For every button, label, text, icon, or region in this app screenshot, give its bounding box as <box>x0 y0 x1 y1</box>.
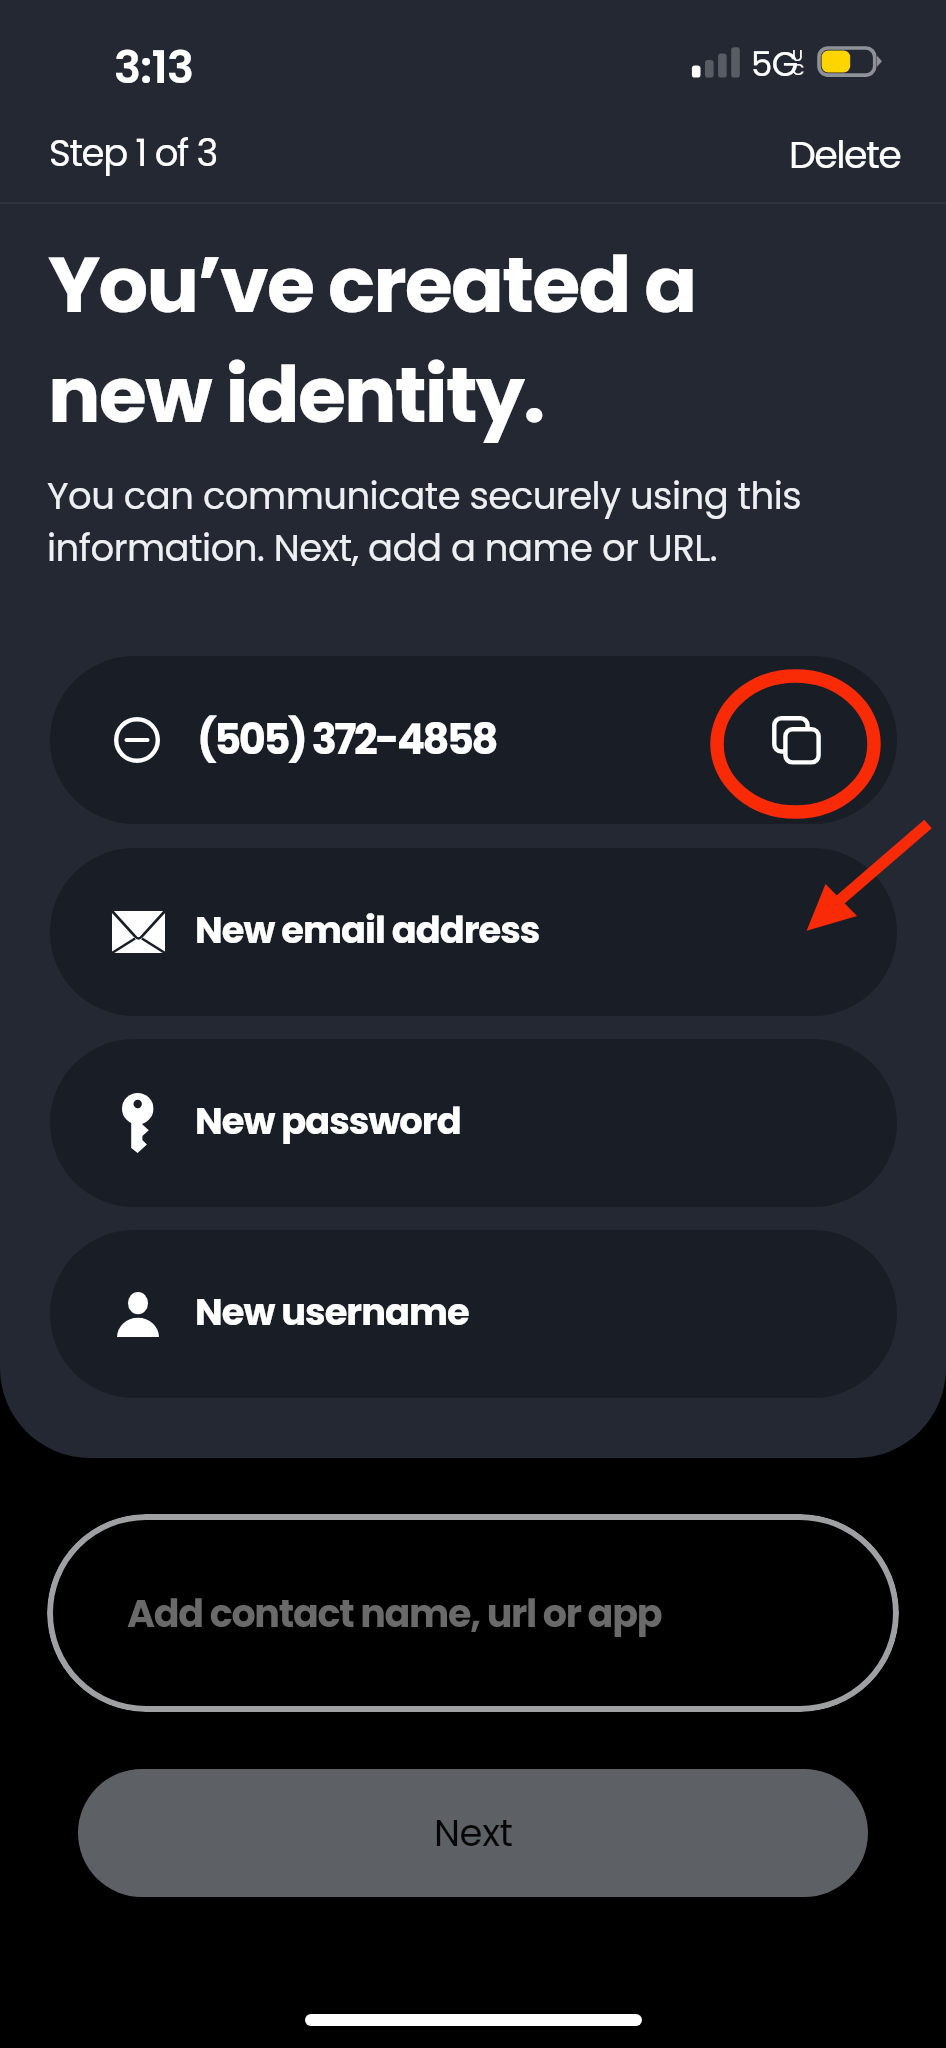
staticText: Delete <box>789 128 901 181</box>
button[interactable]: Step 1 of 3 <box>49 127 217 179</box>
staticText: Next <box>434 1807 513 1859</box>
staticText: 3:13 <box>114 36 194 99</box>
staticText: (505) 372-4858 <box>197 710 497 768</box>
staticText: You’ve created a new identity. <box>48 230 696 449</box>
staticText: New password <box>195 1095 461 1147</box>
button[interactable]: Delete <box>789 128 901 181</box>
staticText: Add contact name, url or app <box>127 1587 662 1640</box>
staticText: New email address <box>195 904 540 956</box>
button[interactable]: Copy phone number <box>732 676 859 803</box>
button[interactable]: New username <box>50 1230 897 1398</box>
staticText: You can communicate securely using this … <box>47 470 802 574</box>
button[interactable]: Next <box>78 1769 868 1897</box>
staticText: C <box>792 58 805 80</box>
button[interactable]: (505) 372-4858 <box>50 656 897 824</box>
staticText: New username <box>195 1286 469 1338</box>
staticText: 5G <box>751 40 798 88</box>
staticText: Step 1 of 3 <box>49 127 217 179</box>
button[interactable]: New email address <box>50 848 897 1016</box>
button[interactable]: New password <box>50 1039 897 1207</box>
staticText: U <box>792 44 803 66</box>
button[interactable]: Add contact name, url or app <box>47 1514 899 1712</box>
